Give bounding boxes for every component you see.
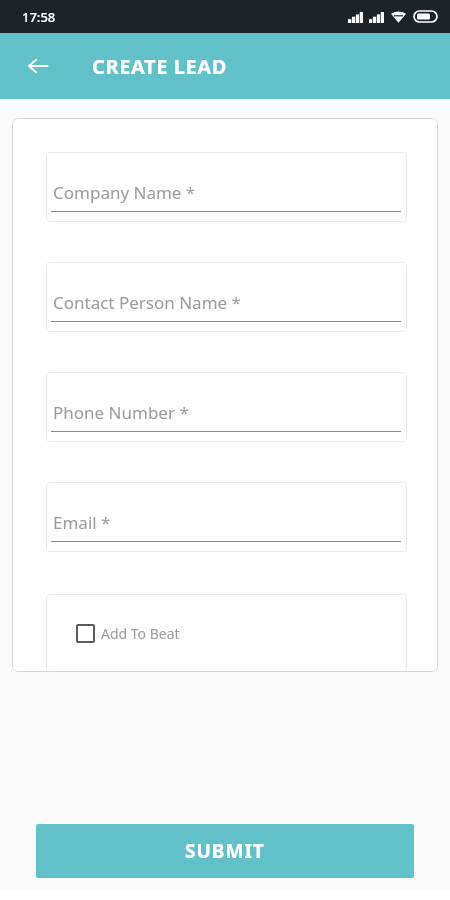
button[interactable]: Contact Person Name * — [46, 262, 407, 332]
button[interactable]: Phone Number * — [46, 372, 407, 442]
staticText: Company Name * — [53, 181, 196, 204]
staticText: CREATE LEAD — [92, 53, 227, 80]
staticText: SUBMIT — [185, 838, 265, 864]
button[interactable]: Back — [16, 44, 60, 88]
staticText: Phone Number * — [53, 401, 189, 424]
button[interactable]: SUBMIT — [36, 824, 414, 878]
button[interactable]: Add To Beat — [46, 594, 407, 672]
button[interactable]: Company Name * — [46, 152, 407, 222]
staticText: Email * — [53, 511, 111, 534]
staticText: Contact Person Name * — [53, 291, 241, 314]
staticText: Add To Beat — [101, 624, 180, 643]
button[interactable]: Email * — [46, 482, 407, 552]
staticText: 17:58 — [22, 8, 56, 26]
